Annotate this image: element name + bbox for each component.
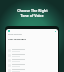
staticText: Your messages — [8, 37, 26, 40]
staticText: Tone of Voice — [20, 13, 44, 18]
button[interactable] — [8, 59, 56, 62]
button[interactable] — [8, 49, 56, 52]
staticText: Good morning — [8, 33, 22, 36]
button[interactable] — [8, 54, 56, 57]
button[interactable] — [8, 64, 56, 67]
button[interactable] — [8, 69, 56, 72]
staticText: Choose The Right — [17, 8, 48, 13]
